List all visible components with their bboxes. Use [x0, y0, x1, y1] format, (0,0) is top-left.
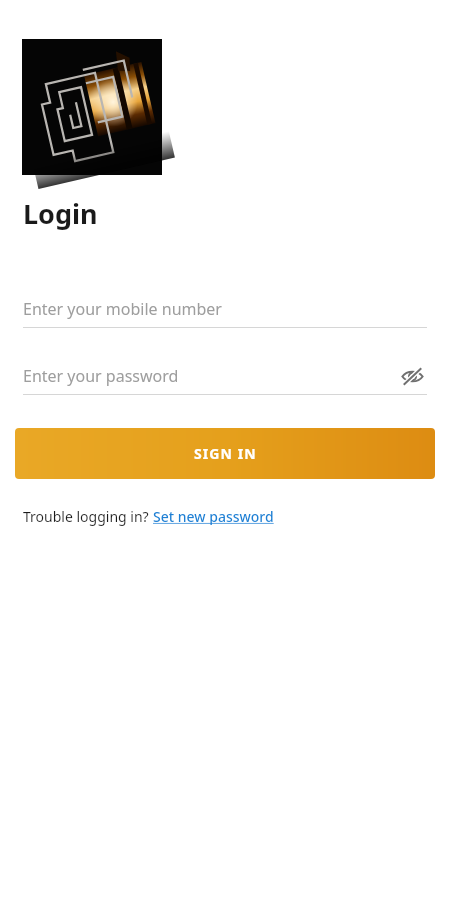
button[interactable]: Enter your password: [23, 361, 427, 391]
button[interactable]: Enter your mobile number: [23, 294, 427, 324]
button[interactable]: Show password: [397, 361, 427, 391]
button[interactable]: SIGN IN: [15, 428, 435, 479]
button[interactable]: Set new password: [153, 507, 274, 526]
staticText: Enter your mobile number: [23, 298, 222, 320]
staticText: Enter your password: [23, 365, 179, 387]
staticText: Login: [23, 195, 98, 232]
staticText: Trouble logging in?: [23, 507, 153, 526]
staticText: SIGN IN: [194, 444, 257, 463]
staticText: Set new password: [153, 507, 274, 526]
